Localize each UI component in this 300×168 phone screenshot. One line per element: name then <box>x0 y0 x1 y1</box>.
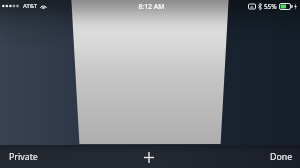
button[interactable]: Private <box>0 146 48 168</box>
button[interactable]: New tab <box>138 146 160 168</box>
staticText: Done <box>270 151 293 163</box>
button[interactable]: Done <box>260 146 300 168</box>
staticText: 8:12 AM <box>138 2 165 11</box>
staticText: 55% <box>264 2 277 11</box>
staticText: Private <box>9 151 38 163</box>
staticText: AT&T <box>23 2 37 10</box>
